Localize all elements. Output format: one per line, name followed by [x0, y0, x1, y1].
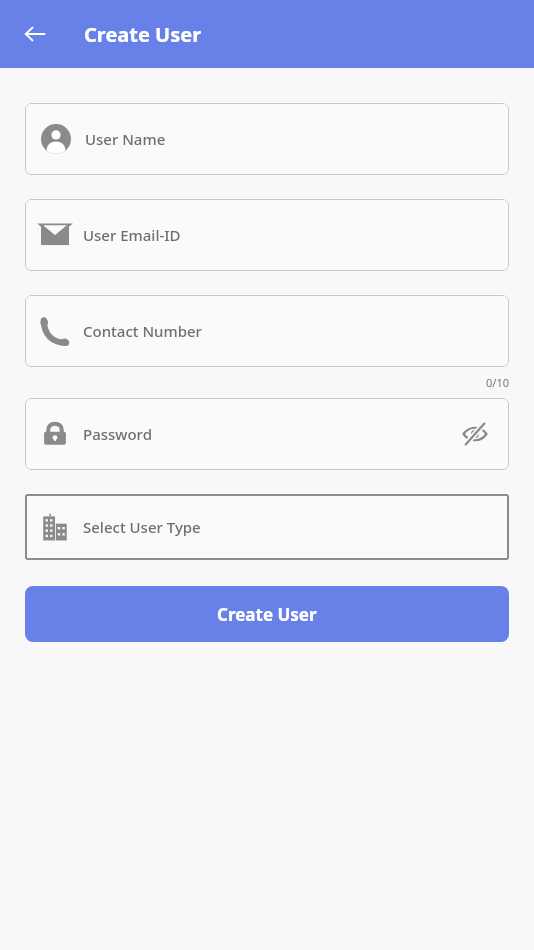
- staticText: User Email-ID: [83, 225, 181, 245]
- staticText: User Name: [85, 129, 166, 149]
- staticText: Contact Number: [83, 321, 202, 341]
- staticText: 0/10: [25, 375, 509, 390]
- button[interactable]: User Name: [25, 103, 509, 175]
- button[interactable]: Contact Number: [25, 295, 509, 367]
- button[interactable]: Select User Type: [25, 494, 509, 560]
- button[interactable]: User Email-ID: [25, 199, 509, 271]
- staticText: Select User Type: [83, 517, 201, 537]
- staticText: Create User: [84, 21, 202, 48]
- button[interactable]: Create User: [25, 586, 509, 642]
- button[interactable]: Password: [25, 398, 509, 470]
- staticText: Password: [83, 424, 152, 444]
- button[interactable]: Back: [14, 13, 56, 55]
- staticText: Create User: [217, 603, 317, 626]
- button[interactable]: Show password: [455, 414, 495, 454]
